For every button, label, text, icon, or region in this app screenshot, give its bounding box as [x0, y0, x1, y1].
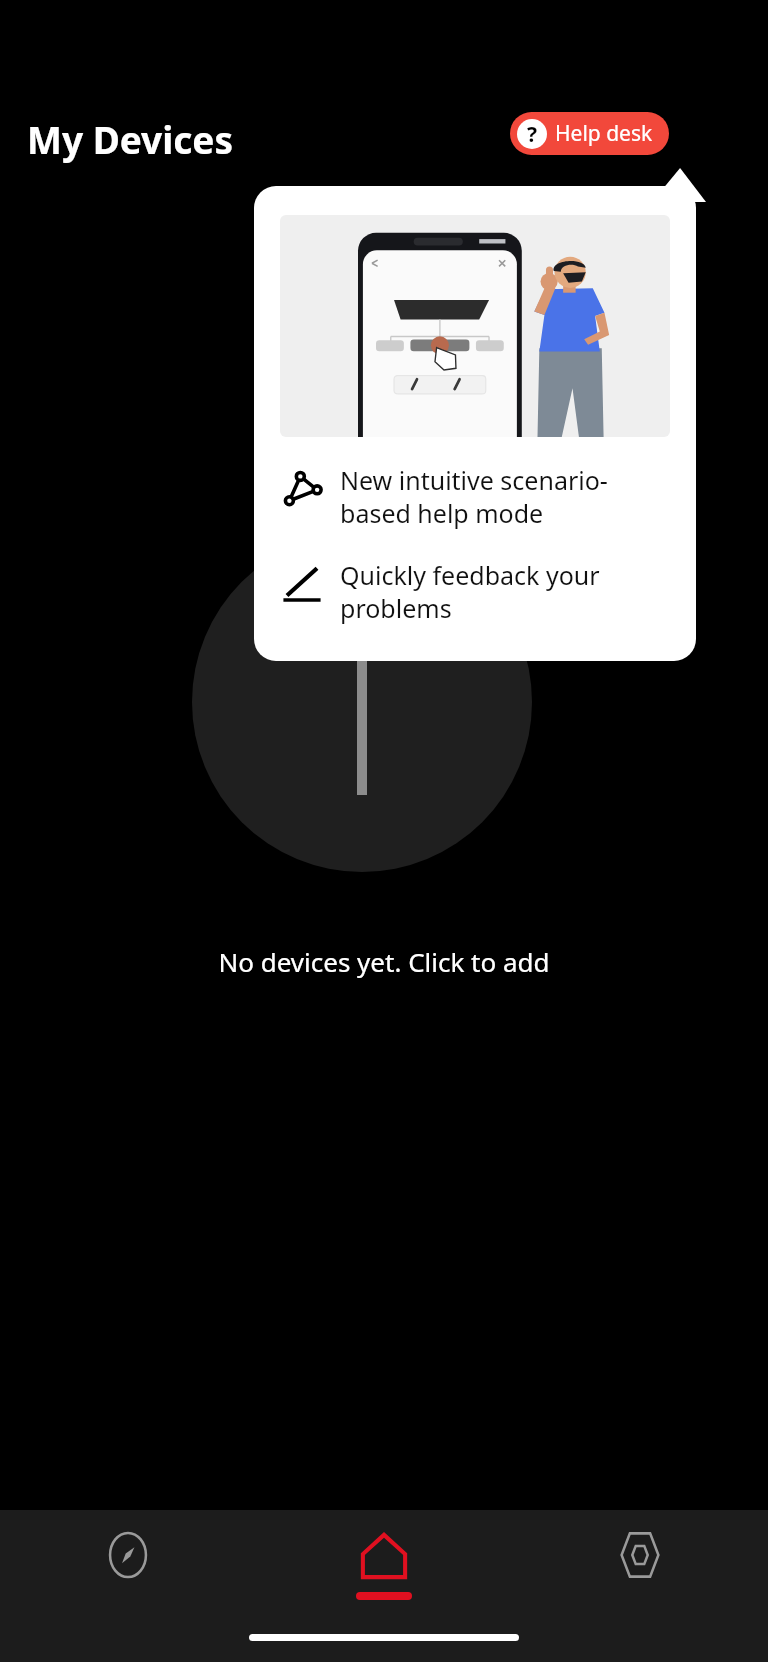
button[interactable]: ? [510, 112, 669, 155]
button[interactable]: New intuitive scenario- based help mode [254, 186, 696, 661]
button[interactable]: Home [256, 1510, 512, 1630]
button[interactable]: Add device [192, 532, 532, 872]
staticText: Quickly feedback your problems [340, 558, 600, 625]
staticText: Help desk [555, 119, 653, 148]
staticText: My Devices [27, 114, 234, 164]
button[interactable]: Quickly feedback your problems [280, 558, 670, 625]
button[interactable]: No devices yet. Click to add [0, 944, 768, 979]
button[interactable]: Settings [512, 1510, 768, 1630]
button[interactable]: New intuitive scenario- based help mode [280, 463, 670, 530]
staticText: ? [527, 120, 538, 149]
staticText: New intuitive scenario- based help mode [340, 463, 608, 530]
button[interactable]: Explore [0, 1510, 256, 1630]
